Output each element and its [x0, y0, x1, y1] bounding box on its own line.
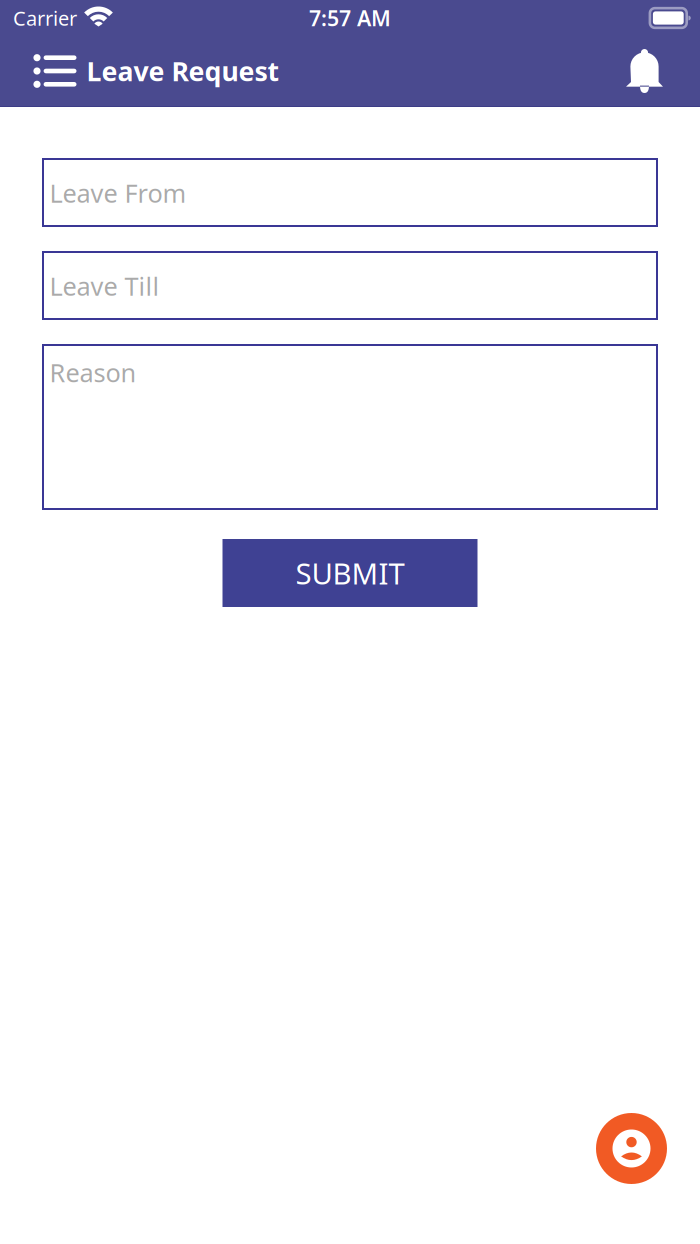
button[interactable]: SUBMIT — [222, 539, 477, 607]
staticText: 7:57 AM — [309, 4, 391, 32]
button[interactable]: Reason — [43, 345, 657, 509]
staticText: Leave Request — [86, 53, 279, 89]
button[interactable]: Notifications — [626, 49, 663, 93]
staticText: SUBMIT — [295, 553, 404, 592]
staticText: Leave Till — [49, 269, 159, 303]
staticText: Leave From — [49, 176, 186, 210]
button[interactable]: Leave From — [43, 159, 657, 226]
staticText: Reason — [49, 355, 136, 389]
button[interactable]: Leave Till — [43, 252, 657, 319]
staticText: Carrier — [13, 5, 77, 31]
button[interactable]: Menu — [33, 45, 76, 97]
button[interactable]: Profile — [596, 1113, 667, 1184]
